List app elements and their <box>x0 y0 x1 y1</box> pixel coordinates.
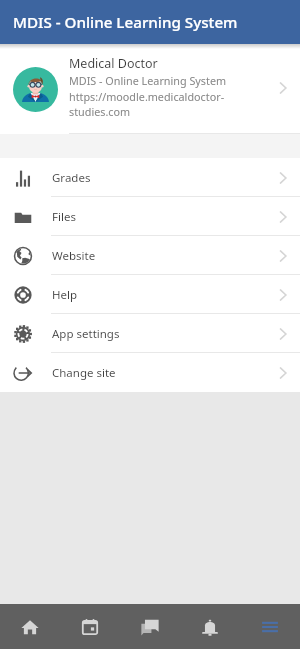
button[interactable]: Grades <box>0 158 300 197</box>
staticText: https://moodle.medicaldoctor- <box>69 89 225 104</box>
button[interactable]: Files <box>0 197 300 236</box>
staticText: Change site <box>52 365 116 381</box>
button[interactable]: App settings <box>0 314 300 353</box>
button[interactable]: Help <box>0 275 300 314</box>
staticText: Website <box>52 248 96 264</box>
staticText: Files <box>52 209 76 225</box>
button[interactable]: Calendar <box>60 604 120 649</box>
button[interactable]: Notifications <box>180 604 240 649</box>
staticText: studies.com <box>69 104 131 119</box>
staticText: Help <box>52 287 78 303</box>
button[interactable]: Medical Doctor <box>0 44 300 134</box>
staticText: App settings <box>52 326 120 342</box>
staticText: MDIS - Online Learning System <box>13 12 238 33</box>
button[interactable]: More <box>240 604 300 649</box>
button[interactable]: Change site <box>0 353 300 392</box>
button[interactable]: Website <box>0 236 300 275</box>
staticText: MDIS - Online Learning System <box>69 73 227 88</box>
staticText: Grades <box>52 170 91 186</box>
staticText: Medical Doctor <box>69 55 158 72</box>
button[interactable]: Home <box>0 604 60 649</box>
button[interactable]: Messages <box>120 604 180 649</box>
